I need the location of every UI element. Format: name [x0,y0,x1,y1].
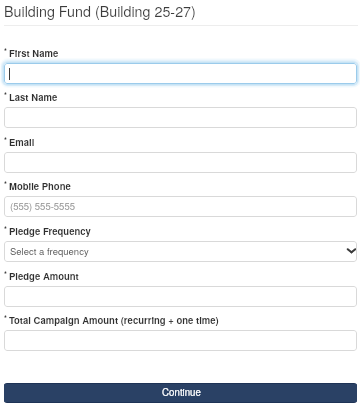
staticText: Total Campaign Amount (recurring + one t… [9,313,219,327]
staticText: * [4,224,7,235]
button[interactable] [4,63,357,84]
button[interactable]: (555) 555-5555 [4,196,357,217]
staticText: Select a frequency [10,244,89,258]
button[interactable] [4,330,357,351]
staticText: (555) 555-5555 [10,199,75,213]
staticText: Continue [162,385,201,399]
button[interactable] [4,152,357,173]
staticText: * [4,46,7,57]
staticText: * [4,90,7,101]
staticText: First Name [9,46,59,60]
button[interactable]: Select a frequency [4,241,357,262]
staticText: * [4,135,7,146]
button[interactable] [4,286,357,307]
staticText: * [4,179,7,190]
other: Open frequency dropdown [347,246,356,255]
staticText: Last Name [9,90,58,104]
staticText: Pledge Frequency [9,224,91,238]
staticText: * [4,269,7,280]
button[interactable]: Continue [4,383,357,403]
staticText: Mobile Phone [9,179,71,193]
button[interactable] [4,107,357,128]
staticText: Building Fund (Building 25-27) [4,1,196,21]
staticText: * [4,313,7,324]
staticText: Pledge Amount [9,269,79,283]
staticText: Email [9,135,35,149]
